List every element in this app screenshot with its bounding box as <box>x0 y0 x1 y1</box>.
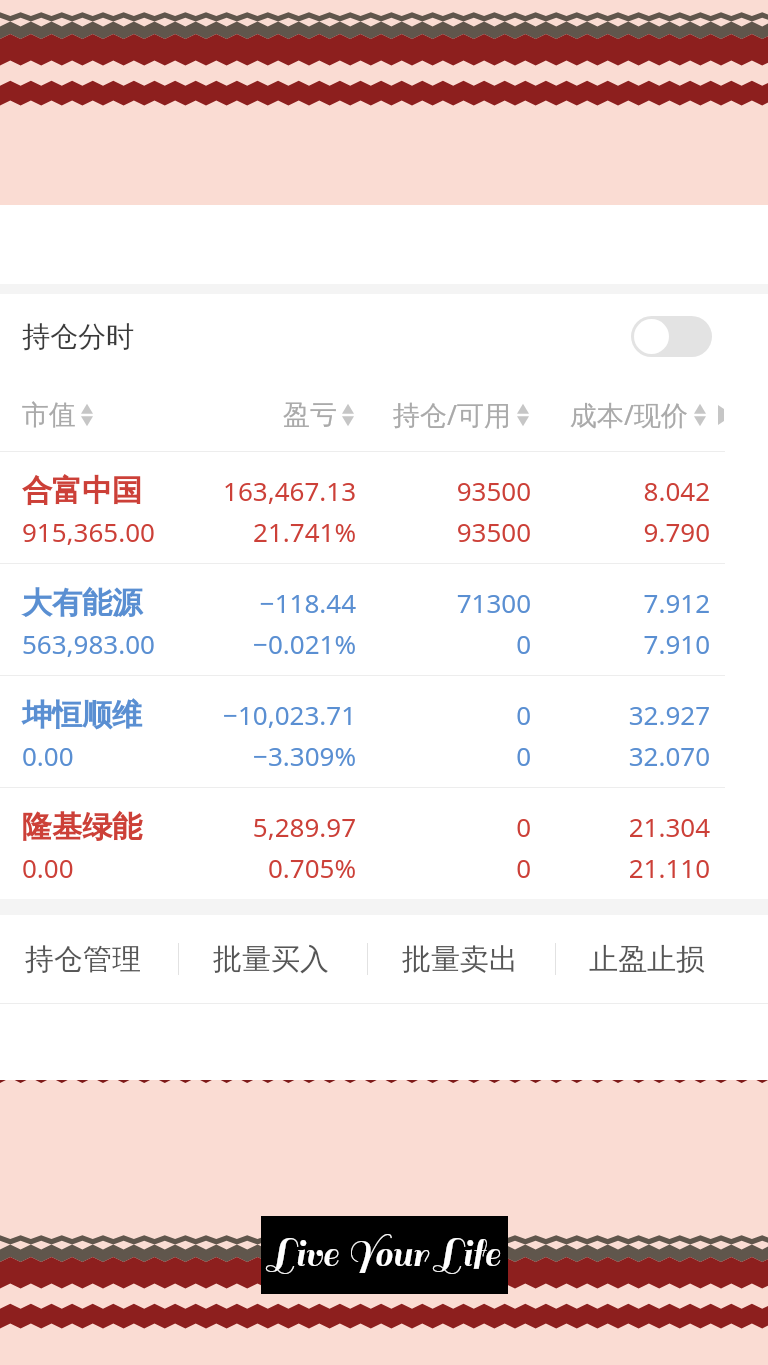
staticText: 71300 <box>231 585 531 620</box>
staticText: 持仓管理 <box>25 941 141 978</box>
staticText: 止盈止损 <box>589 941 705 978</box>
staticText: 21.110 <box>410 850 710 885</box>
button[interactable]: 合富中国 <box>0 451 768 563</box>
staticText: 0.00 <box>22 850 74 885</box>
staticText: 坤恒顺维 <box>22 696 142 734</box>
staticText: 21.304 <box>410 809 710 844</box>
button[interactable]: 持仓/可用 <box>393 396 532 433</box>
staticText: 9.790 <box>410 514 710 549</box>
staticText: 0.705% <box>56 850 356 885</box>
staticText: −3.309% <box>56 738 356 773</box>
staticText: 0 <box>231 626 531 661</box>
staticText: 大有能源 <box>22 584 142 622</box>
button[interactable]: 大有能源 <box>0 563 768 675</box>
button[interactable]: 持仓分时开关 <box>631 316 712 357</box>
staticText: 93500 <box>231 473 531 508</box>
staticText: 0 <box>231 738 531 773</box>
staticText: 合富中国 <box>22 472 142 510</box>
staticText: 7.910 <box>410 626 710 661</box>
staticText: 盈亏 <box>283 398 337 432</box>
staticText: −10,023.71 <box>56 697 356 732</box>
staticText: 0 <box>231 809 531 844</box>
button[interactable]: Live Your Life <box>261 1216 508 1294</box>
staticText: 93500 <box>231 514 531 549</box>
staticText: 163,467.13 <box>56 473 356 508</box>
button[interactable]: 批量卖出 <box>366 915 554 1003</box>
button[interactable]: 隆基绿能 <box>0 787 768 899</box>
staticText: 批量卖出 <box>402 941 518 978</box>
staticText: 563,983.00 <box>22 626 155 661</box>
staticText: 5,289.97 <box>56 809 356 844</box>
staticText: 持仓分时 <box>22 319 134 354</box>
staticText: 0 <box>231 850 531 885</box>
staticText: 7.912 <box>410 585 710 620</box>
staticText: Live Your Life <box>269 1232 500 1278</box>
button[interactable]: 持仓分时 <box>0 294 768 378</box>
staticText: 0 <box>231 697 531 732</box>
button[interactable]: 批量买入 <box>177 915 365 1003</box>
button[interactable]: 坤恒顺维 <box>0 675 768 787</box>
staticText: −0.021% <box>56 626 356 661</box>
staticText: 市值 <box>22 398 76 432</box>
button[interactable]: 止盈止损 <box>553 915 741 1003</box>
staticText: 21.741% <box>56 514 356 549</box>
staticText: 0.00 <box>22 738 74 773</box>
staticText: 批量买入 <box>213 941 329 978</box>
button[interactable]: 持仓管理 <box>0 915 177 1003</box>
button[interactable]: 盈亏 <box>283 398 357 432</box>
staticText: 隆基绿能 <box>22 808 142 846</box>
staticText: 8.042 <box>410 473 710 508</box>
button[interactable]: 更多列 <box>718 400 762 430</box>
staticText: 32.070 <box>410 738 710 773</box>
staticText: 成本/现价 <box>570 396 689 433</box>
button[interactable]: 市值 <box>22 398 96 432</box>
staticText: 915,365.00 <box>22 514 155 549</box>
staticText: 32.927 <box>410 697 710 732</box>
button[interactable]: 成本/现价 <box>570 396 709 433</box>
staticText: −118.44 <box>56 585 356 620</box>
staticText: 持仓/可用 <box>393 396 512 433</box>
